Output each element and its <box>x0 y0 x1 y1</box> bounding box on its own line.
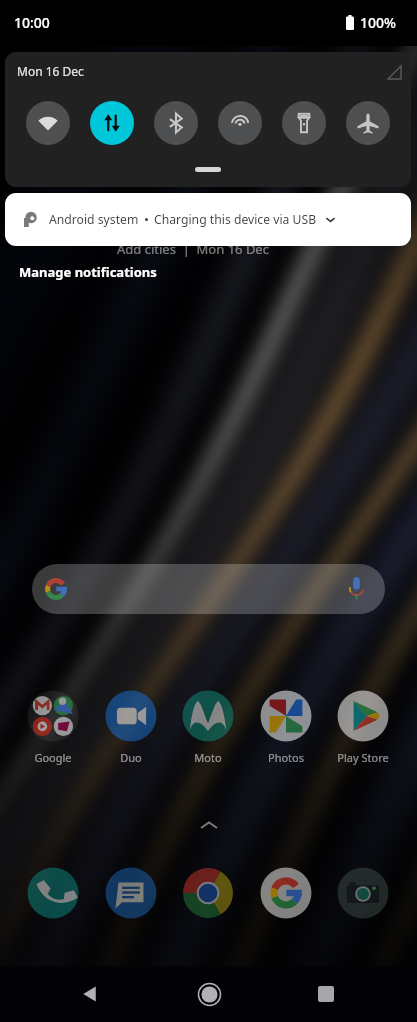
button[interactable]: Phone <box>27 867 79 919</box>
button[interactable]: Home <box>181 966 237 1022</box>
button[interactable]: Flashlight <box>282 101 326 145</box>
staticText: Android system <box>49 211 139 228</box>
button[interactable]: Moto <box>182 690 234 742</box>
button[interactable]: Manage notifications <box>19 263 157 281</box>
button[interactable]: Photos <box>260 690 312 742</box>
staticText: Photos <box>248 750 324 765</box>
staticText: Moto <box>170 750 246 765</box>
button[interactable]: Camera <box>337 867 389 919</box>
staticText: Play Store <box>325 750 401 765</box>
button[interactable]: Wi-Fi <box>26 101 70 145</box>
button[interactable]: Hotspot <box>218 101 262 145</box>
staticText: Add cities | Mon 16 Dec <box>117 240 269 258</box>
button[interactable]: Play Store <box>337 690 389 742</box>
button[interactable]: Google <box>27 690 79 742</box>
staticText: Charging this device via USB <box>154 211 317 228</box>
staticText: 10:00 <box>14 13 50 32</box>
button[interactable]: Android system <box>5 193 411 246</box>
staticText: Mon 16 Dec <box>17 63 84 79</box>
staticText: Duo <box>93 750 169 765</box>
button[interactable]: Search <box>32 564 385 614</box>
button[interactable]: Airplane mode <box>346 101 390 145</box>
button[interactable]: Back <box>62 966 118 1022</box>
staticText: 100% <box>360 13 396 32</box>
button[interactable]: Messages <box>105 867 157 919</box>
button[interactable]: Bluetooth <box>154 101 198 145</box>
button[interactable]: Duo <box>105 690 157 742</box>
button[interactable]: Google <box>260 867 312 919</box>
button[interactable]: Mobile data <box>90 101 134 145</box>
button[interactable]: Chrome <box>182 867 234 919</box>
button[interactable]: Recents <box>298 966 354 1022</box>
staticText: Google <box>15 750 91 765</box>
